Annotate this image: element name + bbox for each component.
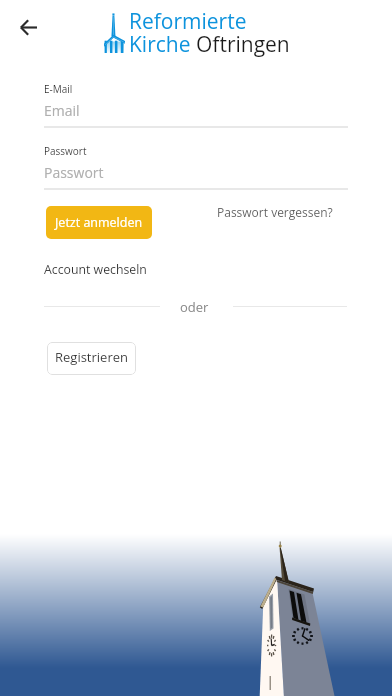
button[interactable]: Account wechseln [44,261,147,278]
button[interactable]: Registrieren [47,342,136,375]
staticText: Email [44,101,80,120]
staticText: oder [180,298,209,316]
staticText: Jetzt anmelden [55,214,143,231]
staticText: E-Mail [44,82,73,96]
staticText: Passwort [44,144,87,158]
staticText: Passwort vergessen? [217,204,333,220]
staticText: Passwort [44,163,104,182]
staticText: Registrieren [55,348,128,366]
button[interactable]: Back [11,10,45,44]
button[interactable]: Jetzt anmelden [46,206,152,239]
staticText: Kirche [129,30,196,59]
staticText: Oftringen [196,30,290,59]
staticText: Reformierte [129,7,247,36]
staticText: Account wechseln [44,261,147,278]
button[interactable]: Passwort vergessen? [217,199,333,225]
